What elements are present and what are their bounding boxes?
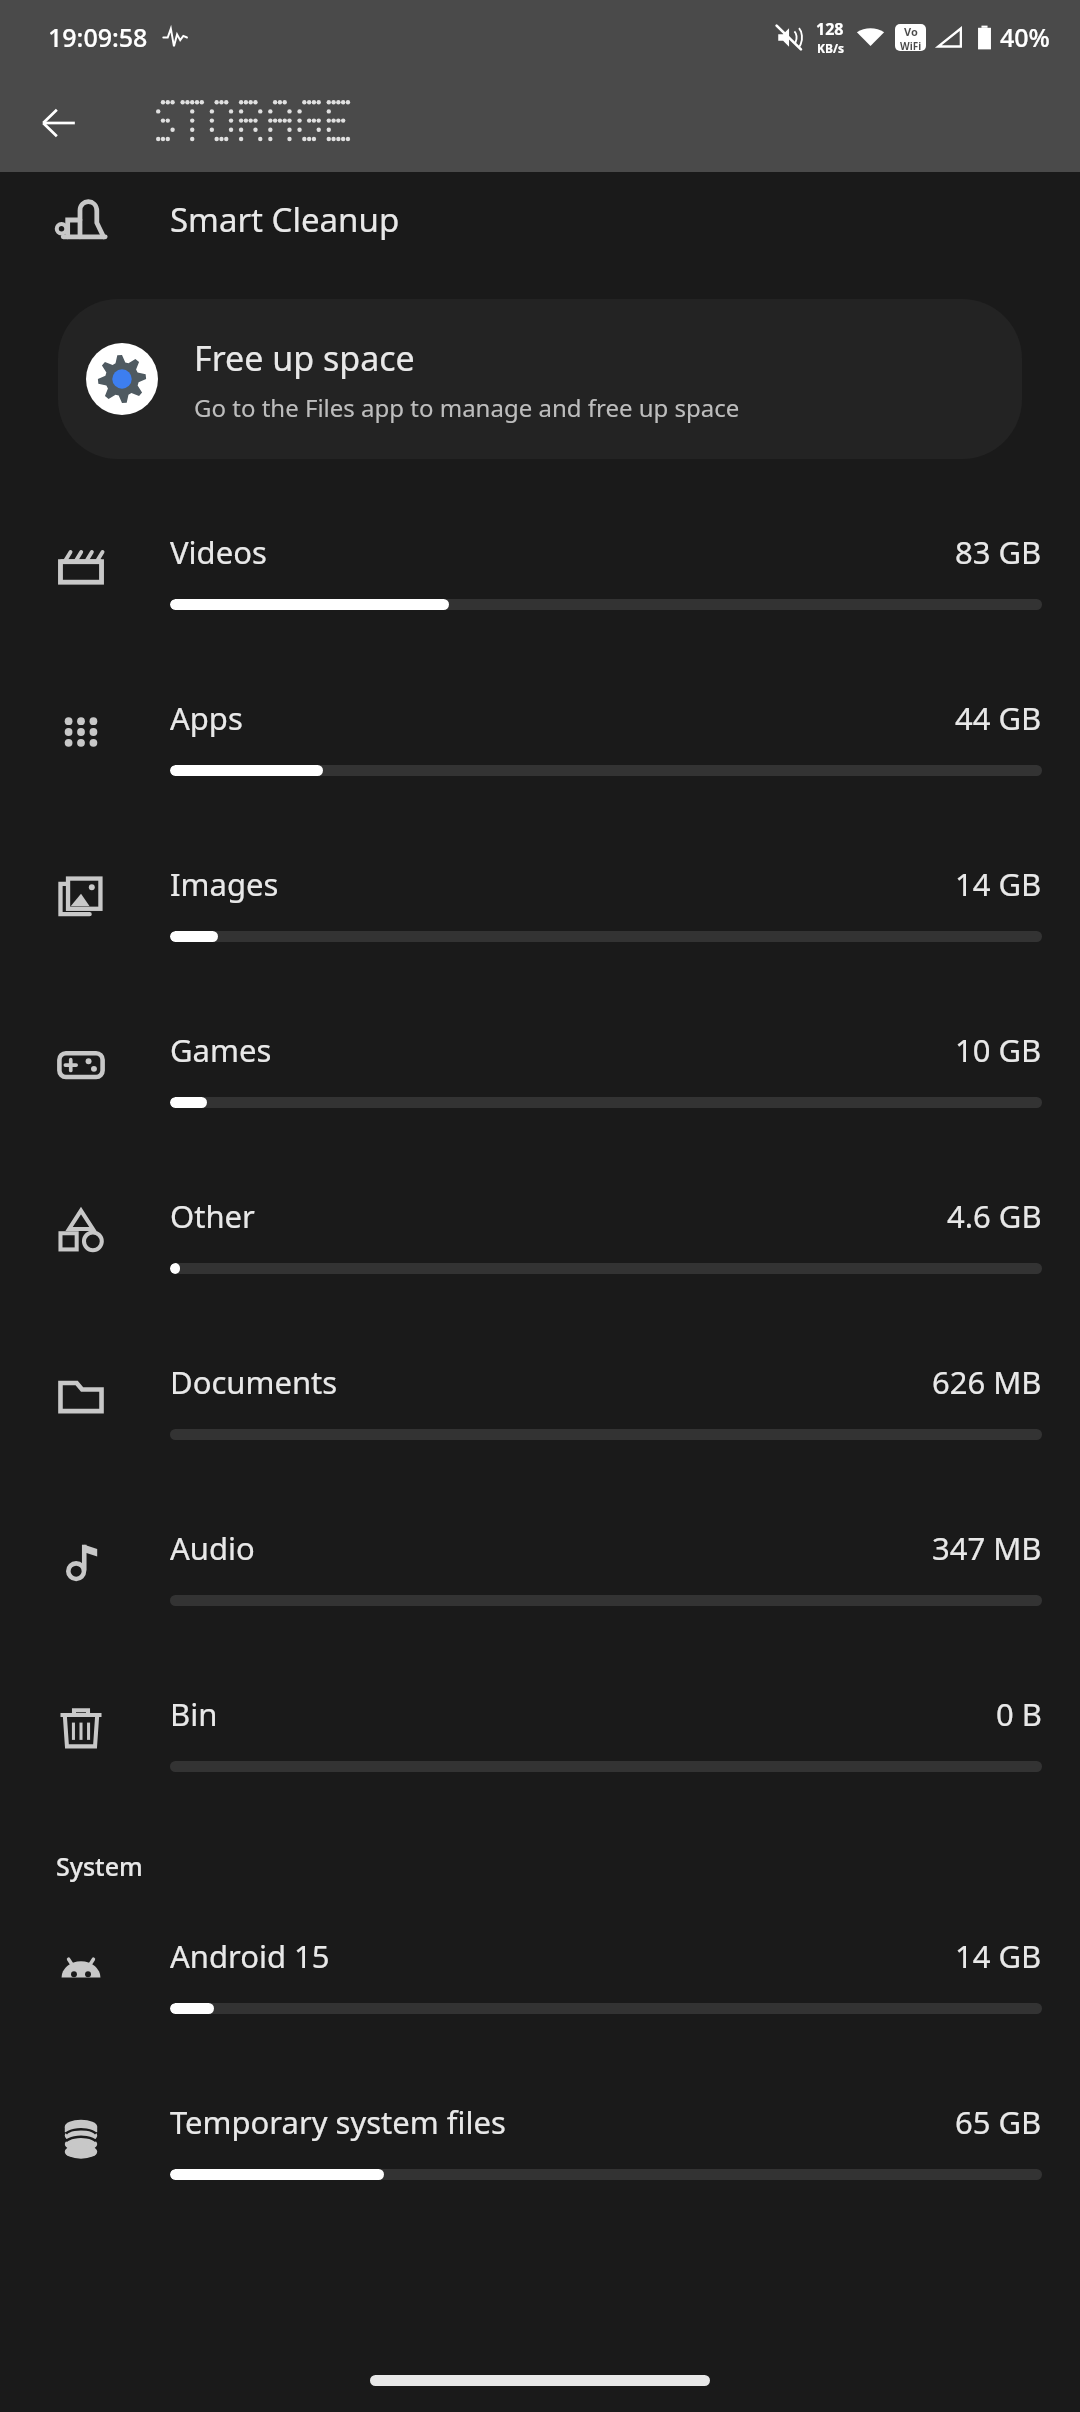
staticText: Images <box>170 863 279 905</box>
staticText: 128 <box>816 18 844 40</box>
staticText: 40% <box>1000 20 1050 54</box>
other: Documents <box>54 1369 108 1423</box>
staticText: Smart Cleanup <box>170 197 400 242</box>
staticText: WiFi <box>900 39 922 51</box>
button[interactable]: Games <box>0 995 1080 1161</box>
other: Games <box>54 1037 108 1091</box>
staticText: 19:09:58 <box>48 20 148 54</box>
staticText: Documents <box>170 1361 338 1403</box>
staticText: System <box>56 1849 143 1883</box>
staticText: Games <box>170 1029 272 1071</box>
staticText: 83 GB <box>955 531 1042 573</box>
other: Images <box>54 871 108 925</box>
staticText: KB/s <box>817 40 844 56</box>
staticText: 0 B <box>996 1693 1042 1735</box>
other: Bin <box>54 1701 108 1755</box>
staticText: 14 GB <box>955 1935 1042 1977</box>
button[interactable]: Videos <box>0 497 1080 663</box>
button[interactable]: Other <box>0 1161 1080 1327</box>
other: Smart Cleanup <box>52 192 108 248</box>
other: Videos <box>54 539 108 593</box>
button[interactable]: Apps <box>0 663 1080 829</box>
staticText: Audio <box>170 1527 255 1569</box>
button[interactable]: Audio <box>0 1493 1080 1659</box>
button[interactable]: Images <box>0 829 1080 995</box>
other: Apps <box>54 705 108 759</box>
other: Other <box>54 1203 108 1257</box>
staticText: 44 GB <box>955 697 1042 739</box>
staticText: 10 GB <box>955 1029 1042 1071</box>
staticText: 626 MB <box>932 1361 1042 1403</box>
button[interactable]: Bin <box>0 1659 1080 1825</box>
other: Android 15 <box>54 1943 108 1997</box>
button[interactable]: Android 15 <box>0 1901 1080 2067</box>
button[interactable]: Free up space <box>58 299 1022 459</box>
staticText: Go to the Files app to manage and free u… <box>194 391 740 424</box>
other: Audio <box>54 1535 108 1589</box>
staticText: 65 GB <box>955 2101 1042 2143</box>
staticText: 14 GB <box>955 863 1042 905</box>
staticText: Videos <box>170 531 267 573</box>
other: Temporary system files <box>54 2109 108 2163</box>
staticText: Apps <box>170 697 243 739</box>
staticText: Vo <box>904 24 918 39</box>
button[interactable]: Documents <box>0 1327 1080 1493</box>
staticText: Other <box>170 1195 255 1237</box>
staticText: 347 MB <box>932 1527 1042 1569</box>
staticText: Android 15 <box>170 1935 330 1977</box>
staticText: Free up space <box>194 335 415 381</box>
staticText: Bin <box>170 1693 218 1735</box>
button[interactable]: Back <box>28 92 90 154</box>
button[interactable]: Smart Cleanup <box>0 172 1080 267</box>
staticText: Temporary system files <box>170 2101 506 2143</box>
staticText: 4.6 GB <box>947 1195 1042 1237</box>
button[interactable]: Temporary system files <box>0 2067 1080 2233</box>
